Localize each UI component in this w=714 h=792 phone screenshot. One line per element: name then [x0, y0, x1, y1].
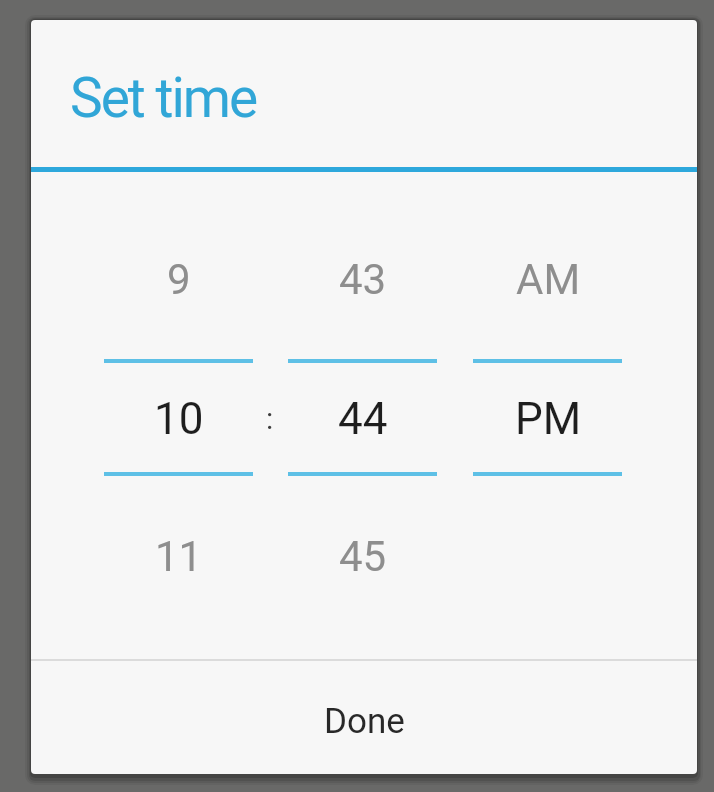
button[interactable]: 11 [104, 516, 254, 596]
button[interactable]: AM [473, 239, 623, 319]
button[interactable]: 43 [288, 239, 438, 319]
staticText: AM [516, 255, 581, 304]
staticText: 44 [338, 393, 388, 445]
button[interactable]: PM [473, 374, 623, 464]
button[interactable]: 9 [104, 239, 254, 319]
staticText: 10 [154, 393, 204, 445]
staticText: Set time [70, 66, 257, 130]
staticText: Done [324, 701, 405, 742]
staticText: 43 [339, 255, 387, 304]
button[interactable]: 44 [288, 374, 438, 464]
button[interactable]: Done [31, 661, 697, 774]
staticText: PM [515, 393, 582, 445]
staticText: 9 [167, 255, 191, 304]
button[interactable]: 45 [288, 516, 438, 596]
button[interactable]: 10 [104, 374, 254, 464]
staticText: 45 [339, 532, 387, 581]
staticText: : [266, 401, 274, 436]
staticText: 11 [155, 532, 203, 581]
